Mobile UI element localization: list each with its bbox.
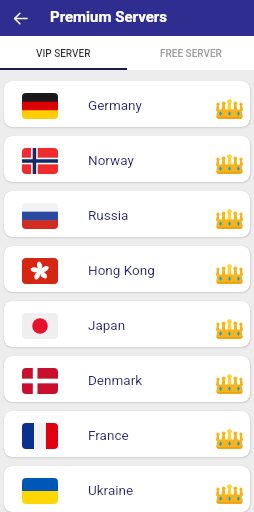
button[interactable]: VIP SERVER [0, 36, 127, 70]
staticText: FREE SERVER [160, 48, 222, 60]
button[interactable]: France [4, 411, 250, 457]
button[interactable]: Russia [4, 191, 250, 237]
button[interactable]: Denmark [4, 356, 250, 402]
staticText: Germany [88, 97, 142, 113]
staticText: Russia [88, 207, 129, 223]
staticText: Norway [88, 152, 134, 168]
button[interactable]: Hong Kong [4, 246, 250, 292]
staticText: Hong Kong [88, 262, 155, 278]
staticText: Denmark [88, 372, 143, 388]
button[interactable]: Japan [4, 301, 250, 347]
button[interactable]: FREE SERVER [127, 36, 254, 70]
button[interactable]: Back [0, 0, 36, 36]
button[interactable]: Norway [4, 136, 250, 182]
staticText: Premium Servers [50, 8, 167, 26]
button[interactable]: Germany [4, 81, 250, 127]
staticText: VIP SERVER [36, 48, 91, 60]
button[interactable]: Ukraine [4, 466, 250, 512]
staticText: Japan [88, 317, 126, 333]
staticText: France [88, 427, 129, 443]
staticText: Ukraine [88, 482, 134, 498]
